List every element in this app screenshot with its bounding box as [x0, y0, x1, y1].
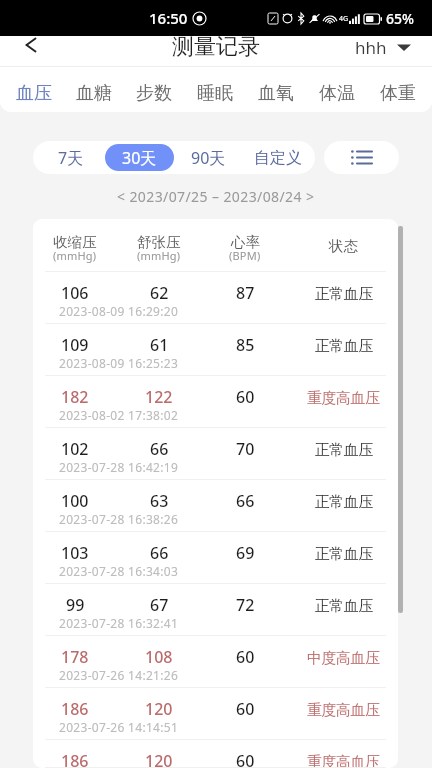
button[interactable]: 99 [33, 584, 398, 636]
staticText: (mmHg) [137, 248, 181, 263]
staticText: 心率 [231, 233, 260, 251]
staticText: 182 [61, 386, 89, 408]
staticText: 2023-07-26 14:14:51 [59, 719, 179, 735]
staticText: 正常血压 [315, 597, 373, 616]
staticText: 2023-07-28 16:38:26 [59, 511, 179, 527]
button[interactable]: 90天 [174, 144, 243, 171]
staticText: 2023-08-02 17:38:02 [59, 407, 179, 423]
staticText: 66 [150, 438, 169, 460]
staticText: 血压 [16, 82, 52, 105]
staticText: 120 [145, 750, 173, 768]
staticText: < 2023/07/25 – 2023/08/24 > [117, 187, 315, 206]
button[interactable]: 体重 [367, 74, 428, 112]
staticText: 61 [150, 334, 169, 356]
button[interactable]: 血糖 [64, 74, 124, 112]
button[interactable]: 106 [33, 272, 398, 324]
staticText: 65% [386, 9, 414, 28]
button[interactable]: Back [0, 36, 62, 66]
button[interactable]: 102 [33, 428, 398, 480]
staticText: 血氧 [258, 82, 294, 105]
button[interactable]: 体温 [306, 74, 367, 112]
staticText: 178 [61, 646, 89, 668]
staticText: 2023-07-28 16:32:41 [59, 615, 179, 631]
staticText: 85 [236, 334, 255, 356]
staticText: 99 [66, 594, 85, 616]
staticText: 63 [150, 490, 169, 512]
staticText: 16:50 [149, 8, 188, 28]
staticText: 106 [61, 282, 89, 304]
staticText: 自定义 [254, 148, 302, 168]
button[interactable]: 178 [33, 636, 398, 688]
staticText: 中度高血压 [307, 649, 380, 668]
button[interactable]: 睡眠 [184, 74, 245, 112]
staticText: 60 [236, 750, 255, 768]
button[interactable]: 血氧 [245, 74, 306, 112]
staticText: 66 [150, 542, 169, 564]
staticText: 正常血压 [315, 545, 373, 564]
staticText: 108 [145, 646, 173, 668]
staticText: 100 [61, 490, 89, 512]
staticText: 体温 [319, 82, 355, 105]
staticText: (BPM) [229, 248, 261, 263]
staticText: 62 [150, 282, 169, 304]
staticText: 7天 [58, 147, 84, 169]
staticText: 109 [61, 334, 89, 356]
staticText: 重度高血压 [307, 389, 380, 408]
staticText: 186 [61, 750, 89, 768]
staticText: 60 [236, 386, 255, 408]
button[interactable]: 182 [33, 376, 398, 428]
button[interactable]: 100 [33, 480, 398, 532]
button[interactable]: 7天 [36, 144, 105, 171]
staticText: 测量记录 [172, 33, 260, 61]
staticText: 90天 [191, 147, 226, 169]
staticText: 69 [236, 542, 255, 564]
staticText: 70 [236, 438, 255, 460]
button[interactable]: hhh [355, 36, 411, 66]
staticText: 2023-08-09 16:25:23 [59, 355, 179, 371]
staticText: (mmHg) [53, 248, 97, 263]
button[interactable]: 103 [33, 532, 398, 584]
staticText: 正常血压 [315, 493, 373, 512]
staticText: 60 [236, 698, 255, 720]
staticText: 体重 [380, 82, 416, 105]
button[interactable]: List view [324, 141, 399, 174]
staticText: 血糖 [76, 82, 112, 105]
staticText: 重度高血压 [307, 753, 380, 768]
staticText: 66 [236, 490, 255, 512]
staticText: 120 [145, 698, 173, 720]
button[interactable]: 186 [33, 688, 398, 740]
staticText: 102 [61, 438, 89, 460]
staticText: 正常血压 [315, 285, 373, 304]
staticText: 122 [145, 386, 173, 408]
button[interactable]: 30天 [105, 144, 174, 171]
staticText: 2023-07-26 14:21:26 [59, 667, 179, 683]
button[interactable]: 自定义 [243, 144, 312, 171]
button[interactable]: 血压 [4, 74, 64, 112]
staticText: 4G [339, 14, 349, 24]
staticText: 2023-07-28 16:34:03 [59, 563, 179, 579]
button[interactable]: 186 [33, 740, 398, 768]
staticText: 186 [61, 698, 89, 720]
staticText: 步数 [136, 82, 172, 105]
staticText: 103 [61, 542, 89, 564]
staticText: 87 [236, 282, 255, 304]
staticText: 状态 [329, 237, 358, 255]
button[interactable]: 109 [33, 324, 398, 376]
staticText: 舒张压 [137, 233, 181, 251]
staticText: 睡眠 [197, 82, 233, 105]
staticText: 60 [236, 646, 255, 668]
staticText: 72 [236, 594, 255, 616]
staticText: 正常血压 [315, 337, 373, 356]
staticText: hhh [355, 36, 387, 59]
button[interactable]: 步数 [124, 74, 184, 112]
staticText: 正常血压 [315, 441, 373, 460]
staticText: 2023-08-09 16:29:20 [59, 303, 179, 319]
staticText: 67 [150, 594, 169, 616]
staticText: 2023-07-28 16:42:19 [59, 459, 179, 475]
staticText: 收缩压 [53, 233, 97, 251]
staticText: 重度高血压 [307, 701, 380, 720]
staticText: 30天 [122, 147, 157, 169]
